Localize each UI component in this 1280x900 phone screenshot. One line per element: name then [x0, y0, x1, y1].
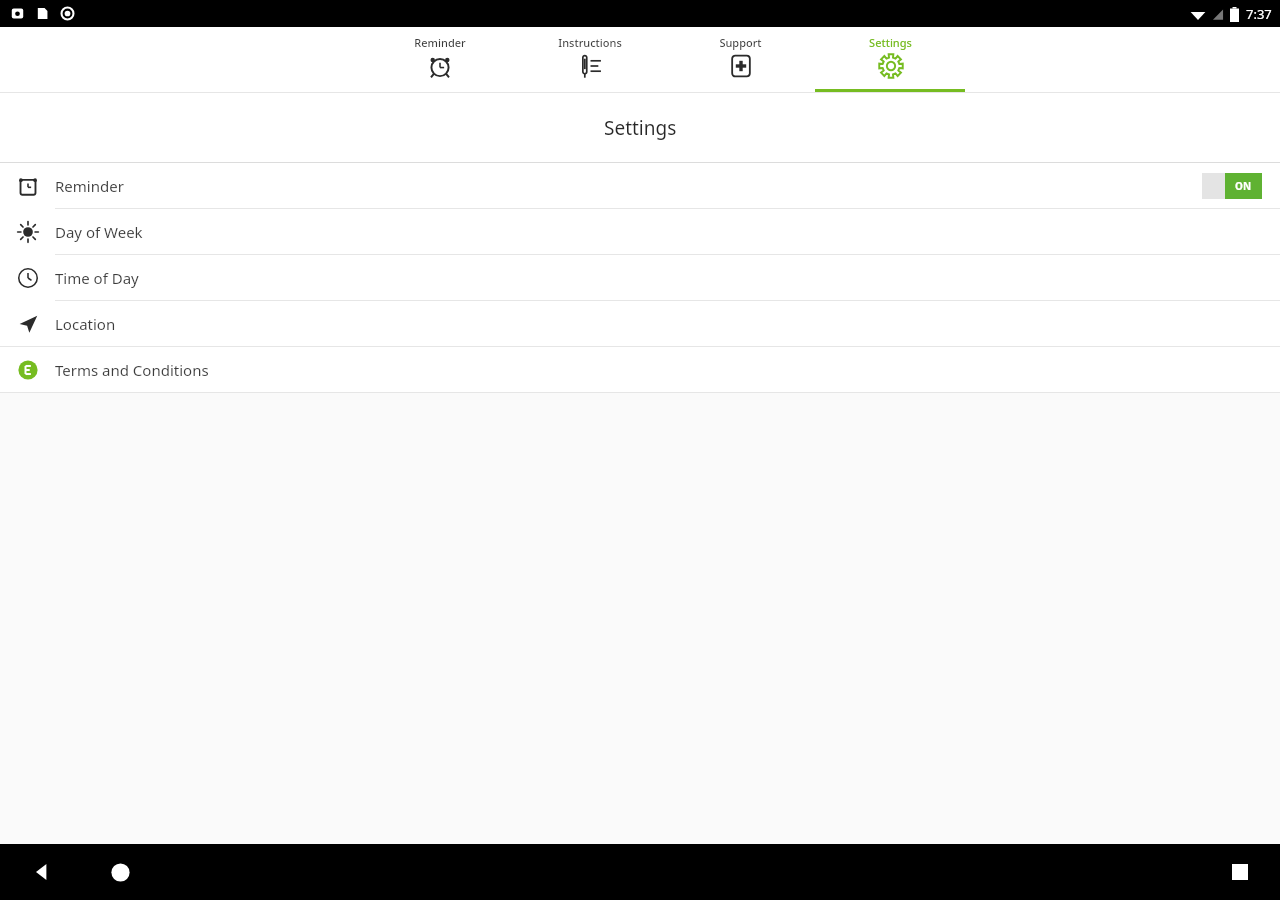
- button[interactable]: Time of Day: [0, 255, 1280, 300]
- button[interactable]: Terms and Conditions: [0, 347, 1280, 392]
- button[interactable]: Reminder: [365, 27, 515, 93]
- staticText: Terms and Conditions: [55, 360, 209, 380]
- staticText: Support: [719, 35, 762, 50]
- staticText: 7:37: [1246, 5, 1272, 23]
- staticText: Location: [55, 314, 116, 334]
- staticText: Settings: [869, 35, 912, 50]
- button[interactable]: Back: [14, 844, 70, 900]
- button[interactable]: Home: [92, 844, 148, 900]
- staticText: Reminder: [55, 176, 124, 196]
- button[interactable]: Recent apps: [1212, 844, 1268, 900]
- staticText: Settings: [604, 115, 677, 141]
- button[interactable]: Instructions: [515, 27, 665, 93]
- staticText: Reminder: [414, 35, 466, 50]
- button[interactable]: Day of Week: [0, 209, 1280, 254]
- button[interactable]: Reminder on: [1202, 173, 1262, 199]
- staticText: Time of Day: [55, 268, 139, 288]
- button[interactable]: Reminder: [0, 163, 1280, 208]
- button[interactable]: Support: [665, 27, 815, 93]
- staticText: ON: [1235, 179, 1252, 193]
- button[interactable]: Settings: [815, 27, 965, 93]
- staticText: Instructions: [558, 35, 622, 50]
- button[interactable]: Location: [0, 301, 1280, 346]
- staticText: Day of Week: [55, 222, 143, 242]
